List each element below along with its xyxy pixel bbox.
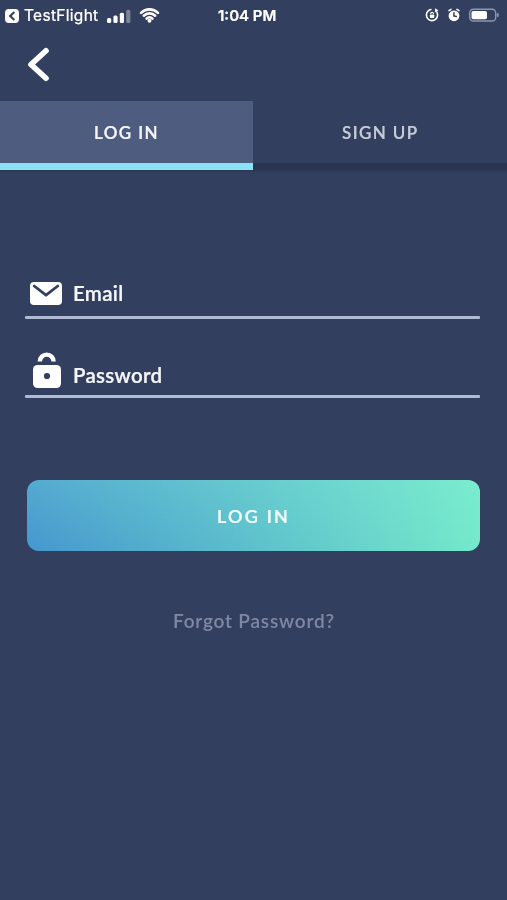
button[interactable]: Password <box>73 362 163 388</box>
staticText: LOG IN <box>94 122 159 142</box>
staticText: TestFlight <box>24 6 99 25</box>
staticText: Password <box>73 363 163 388</box>
staticText: Email <box>73 281 124 306</box>
staticText: LOG IN <box>217 505 291 527</box>
button[interactable]: LOG IN <box>0 101 253 170</box>
button[interactable]: SIGN UP <box>253 101 507 170</box>
staticText: SIGN UP <box>342 122 419 142</box>
staticText: 1:04 PM <box>218 6 277 24</box>
staticText: Forgot Password? <box>173 609 335 632</box>
button[interactable] <box>5 9 19 23</box>
button[interactable]: Forgot Password? <box>0 605 507 635</box>
button[interactable] <box>16 42 60 86</box>
button[interactable]: Email <box>30 280 124 307</box>
button[interactable]: LOG IN <box>27 480 480 551</box>
